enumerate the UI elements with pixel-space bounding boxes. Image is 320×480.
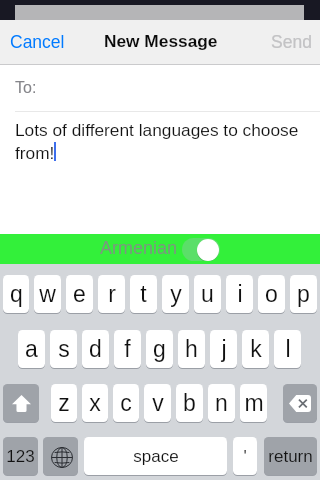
button[interactable]: j — [210, 330, 237, 368]
button[interactable]: v — [144, 384, 171, 422]
button[interactable]: x — [82, 384, 108, 422]
button[interactable]: o — [258, 275, 285, 313]
button[interactable]: c — [113, 384, 139, 422]
staticText: b — [183, 390, 196, 416]
staticText: i — [237, 281, 243, 307]
staticText: z — [58, 390, 70, 416]
button[interactable]: a — [18, 330, 45, 368]
button[interactable]: w — [34, 275, 61, 313]
staticText: n — [215, 390, 228, 416]
staticText: p — [297, 281, 310, 307]
button[interactable]: Backspace — [283, 384, 317, 422]
button[interactable]: d — [82, 330, 109, 368]
button[interactable]: Cancel — [0, 21, 77, 63]
staticText: x — [89, 390, 101, 416]
button[interactable]: p — [290, 275, 317, 313]
staticText: y — [170, 281, 182, 307]
staticText: a — [25, 336, 38, 362]
button[interactable]: e — [66, 275, 93, 313]
button[interactable]: Shift — [3, 384, 39, 422]
staticText: j — [221, 336, 227, 362]
staticText: f — [124, 336, 131, 362]
button[interactable]: z — [51, 384, 77, 422]
button[interactable]: Toggle Armenian keyboard — [182, 238, 220, 261]
staticText: return — [268, 447, 313, 466]
staticText: l — [285, 336, 291, 362]
staticText: e — [73, 281, 86, 307]
button[interactable]: n — [208, 384, 235, 422]
button[interactable]: k — [242, 330, 269, 368]
staticText: c — [120, 390, 132, 416]
staticText: Armenian — [100, 238, 178, 258]
button[interactable]: t — [130, 275, 157, 313]
button[interactable]: u — [194, 275, 221, 313]
staticText: g — [153, 336, 166, 362]
staticText: Cancel — [10, 32, 65, 52]
staticText: o — [265, 281, 278, 307]
button[interactable]: return — [264, 437, 317, 475]
staticText: q — [10, 281, 23, 307]
button[interactable]: y — [162, 275, 189, 313]
staticText: t — [140, 281, 147, 307]
button[interactable]: g — [146, 330, 173, 368]
staticText: d — [89, 336, 102, 362]
staticText: r — [108, 281, 116, 307]
staticText: m — [244, 390, 264, 416]
button[interactable]: Switch keyboard language — [43, 437, 78, 475]
button[interactable]: Send — [259, 21, 320, 63]
staticText: v — [152, 390, 164, 416]
staticText: New Message — [104, 31, 218, 50]
button[interactable]: h — [178, 330, 205, 368]
button[interactable]: r — [98, 275, 125, 313]
button[interactable]: 123 — [3, 437, 38, 475]
staticText: Lots of different languages to choose fr… — [15, 120, 311, 163]
staticText: w — [39, 281, 56, 307]
staticText: ' — [243, 447, 247, 466]
button[interactable]: i — [226, 275, 253, 313]
button[interactable]: q — [3, 275, 29, 313]
staticText: u — [201, 281, 214, 307]
staticText: space — [133, 447, 179, 466]
button[interactable]: To: — [0, 65, 320, 111]
staticText: s — [58, 336, 70, 362]
staticText: h — [185, 336, 198, 362]
staticText: 123 — [6, 447, 35, 466]
staticText: To: — [15, 79, 37, 97]
staticText: k — [250, 336, 262, 362]
button[interactable]: s — [50, 330, 77, 368]
button[interactable]: b — [176, 384, 203, 422]
button[interactable]: l — [274, 330, 301, 368]
button[interactable]: m — [240, 384, 267, 422]
button[interactable]: space — [84, 437, 227, 475]
button[interactable]: f — [114, 330, 141, 368]
staticText: Send — [271, 32, 312, 52]
button[interactable]: ' — [233, 437, 257, 475]
